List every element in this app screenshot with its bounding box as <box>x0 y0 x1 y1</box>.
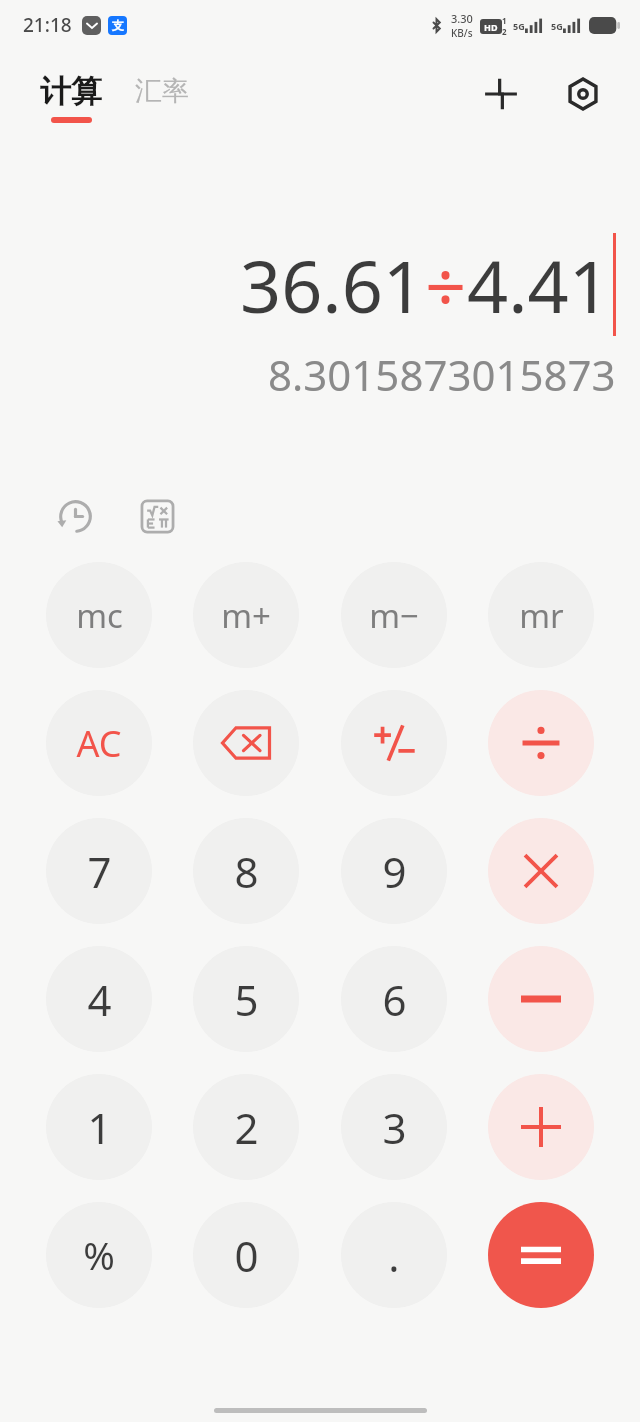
staticText: 5G <box>551 20 563 32</box>
staticText: 汇率 <box>135 74 189 108</box>
button[interactable]: 4 <box>46 946 152 1052</box>
staticText: 36.61 <box>240 236 425 334</box>
staticText: 0 <box>234 1227 259 1284</box>
button[interactable]: % <box>46 1202 152 1308</box>
button[interactable]: Settings <box>556 67 610 121</box>
button[interactable]: 汇率 <box>135 74 189 122</box>
button[interactable]: History <box>48 489 102 543</box>
button[interactable]: 2 <box>193 1074 299 1180</box>
button[interactable]: 计算 <box>40 72 102 123</box>
button[interactable]: 1 <box>46 1074 152 1180</box>
staticText: HD <box>484 21 498 33</box>
button[interactable]: Unit converter <box>474 67 528 121</box>
staticText: 计算 <box>40 72 102 111</box>
button[interactable]: Multiply <box>488 818 594 924</box>
button[interactable]: 7 <box>46 818 152 924</box>
staticText: 2 <box>502 26 507 37</box>
staticText: 1 <box>502 15 507 26</box>
button[interactable]: Scientific mode <box>130 489 184 543</box>
button[interactable]: m+ <box>193 562 299 668</box>
staticText: m− <box>369 593 419 638</box>
staticText: 2 <box>234 1099 259 1156</box>
staticText: KB/s <box>451 26 473 40</box>
button[interactable]: . <box>341 1202 447 1308</box>
staticText: 21:18 <box>23 12 72 38</box>
staticText: ÷ <box>425 236 467 334</box>
button[interactable]: 0 <box>193 1202 299 1308</box>
button[interactable]: Minus <box>488 946 594 1052</box>
staticText: 5 <box>234 971 259 1028</box>
button[interactable]: 6 <box>341 946 447 1052</box>
staticText: mr <box>519 593 564 638</box>
staticText: 1 <box>87 1099 112 1156</box>
button[interactable]: 9 <box>341 818 447 924</box>
button[interactable]: m− <box>341 562 447 668</box>
staticText: 7 <box>87 843 112 900</box>
staticText: . <box>388 1227 400 1284</box>
staticText: 3 <box>382 1099 407 1156</box>
button[interactable]: 5 <box>193 946 299 1052</box>
staticText: % <box>83 1229 115 1281</box>
staticText: 6 <box>382 971 407 1028</box>
button[interactable]: Plus <box>488 1074 594 1180</box>
button[interactable]: Divide <box>488 690 594 796</box>
staticText: AC <box>76 719 122 768</box>
staticText: m+ <box>221 593 271 638</box>
staticText: 8.3015873015873 <box>268 346 616 403</box>
staticText: 9 <box>382 843 407 900</box>
button[interactable]: 3 <box>341 1074 447 1180</box>
button[interactable]: mr <box>488 562 594 668</box>
staticText: 支 <box>112 18 124 33</box>
button[interactable]: Equals <box>488 1202 594 1308</box>
staticText: 8 <box>234 843 259 900</box>
staticText: 3.30 <box>451 11 473 26</box>
button[interactable]: AC <box>46 690 152 796</box>
button[interactable]: Plus minus <box>341 690 447 796</box>
button[interactable]: mc <box>46 562 152 668</box>
button[interactable]: 8 <box>193 818 299 924</box>
staticText: mc <box>76 593 123 638</box>
staticText: 4.41 <box>467 236 610 334</box>
button[interactable]: Backspace <box>193 690 299 796</box>
staticText: 4 <box>87 971 112 1028</box>
staticText: 5G <box>513 20 525 32</box>
